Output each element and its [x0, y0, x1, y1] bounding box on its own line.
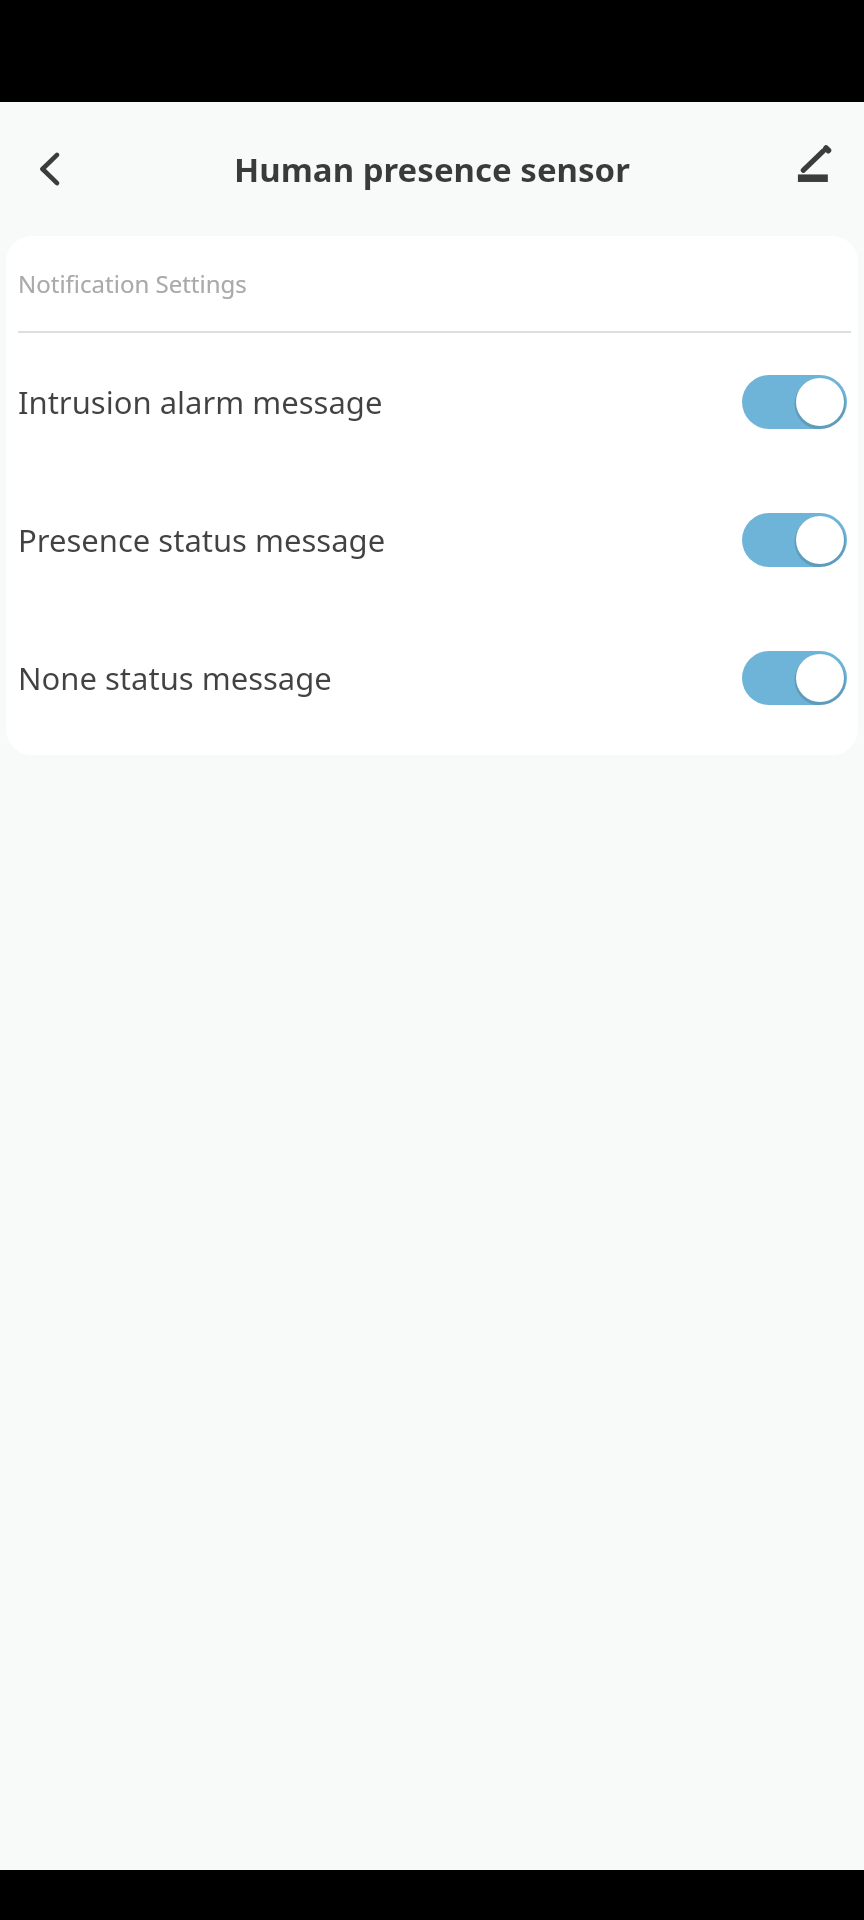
staticText: Presence status message	[18, 519, 742, 561]
button[interactable]: Back	[10, 129, 90, 209]
staticText: Notification Settings	[18, 267, 247, 300]
button[interactable]: Edit	[772, 125, 852, 205]
button[interactable]: Toggle on	[742, 513, 847, 567]
button[interactable]: Toggle on	[742, 375, 847, 429]
button[interactable]: Toggle on	[742, 651, 847, 705]
button[interactable]: None status message	[6, 609, 858, 747]
staticText: None status message	[18, 657, 742, 699]
staticText: Intrusion alarm message	[18, 381, 742, 423]
staticText: Human presence sensor	[0, 147, 864, 192]
button[interactable]: Presence status message	[6, 471, 858, 609]
button[interactable]: Intrusion alarm message	[6, 333, 858, 471]
